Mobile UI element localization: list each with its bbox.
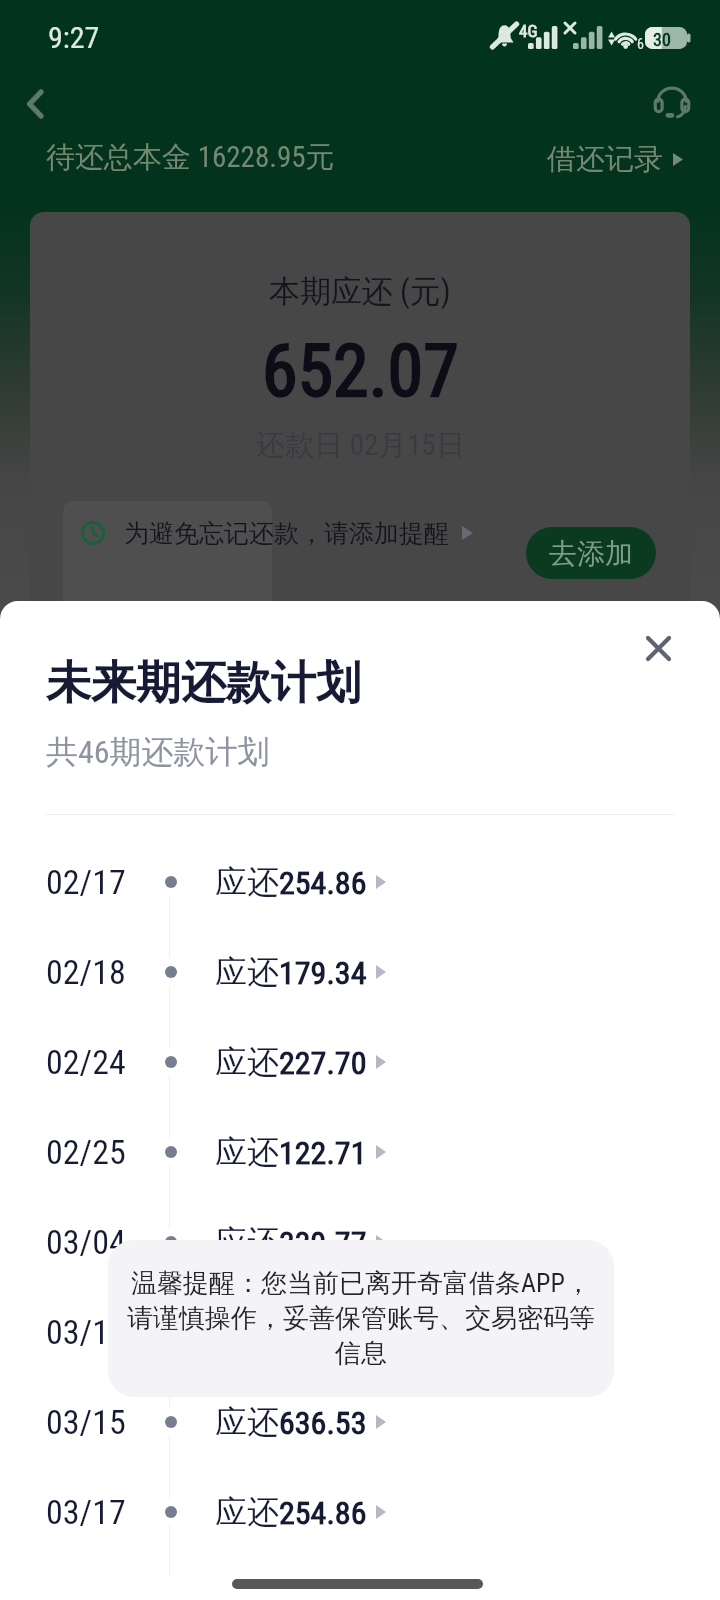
staticText: 339.77 [279,1224,367,1262]
staticText: 179.34 [279,954,367,992]
staticText: 652.07 [262,329,459,413]
staticText: 02/17 [46,862,126,902]
button[interactable]: Customer service [644,76,700,132]
staticText: 应还 [215,1132,279,1172]
staticText: 6 [637,36,644,52]
button[interactable]: 为避免忘记还款，请添加提醒 [81,502,473,564]
staticText: 应还 [215,952,279,992]
button[interactable]: 02/25 [0,1122,720,1182]
staticText: 本期应还 (元) [269,272,451,311]
staticText: 02/18 [46,952,126,992]
staticText: 为避免忘记还款，请添加提醒 [124,518,449,549]
staticText: 03/17 [46,1492,126,1532]
button[interactable]: 02/24 [0,1032,720,1092]
staticText: 应还 [215,1042,279,1082]
button[interactable]: 借还记录 [547,141,683,178]
staticText: 应还 [215,1402,279,1442]
staticText: 02/24 [46,1042,126,1082]
staticText: 共46期还款计划 [46,732,270,772]
staticText: 应还 [215,862,279,902]
staticText: 未来期还款计划 [46,655,361,712]
staticText: 03/15 [46,1402,126,1442]
staticText: 30 [653,29,671,50]
staticText: 4G [519,21,538,41]
staticText: 温馨提醒：您当前已离开奇富借条APP， 请谨慎操作，妥善保管账号、交易密码等 信… [127,1267,595,1370]
staticText: 借还记录 [547,141,663,178]
staticText: 122.71 [279,1134,367,1172]
staticText: 254.86 [279,864,367,902]
button[interactable]: Close [628,618,688,678]
staticText: 227.70 [279,1044,367,1082]
staticText: 214.38 [279,1314,367,1352]
staticText: 636.53 [279,1404,367,1442]
staticText: 254.86 [279,1494,367,1532]
button[interactable]: 03/04 [0,1212,720,1272]
button[interactable]: Back [8,76,64,132]
staticText: 03/11 [46,1312,126,1352]
staticText: 应还 [215,1222,279,1262]
button[interactable]: 03/17 [0,1482,720,1542]
button[interactable]: 03/15 [0,1392,720,1452]
staticText: 去添加 [549,536,633,571]
staticText: 还款日 02月15日 [256,427,465,464]
staticText: 应还 [215,1492,279,1532]
staticText: 02/25 [46,1132,126,1172]
staticText: 9:27 [48,20,100,55]
staticText: 03/04 [46,1222,126,1262]
staticText: 应还 [215,1312,279,1352]
button[interactable]: 去添加 [526,527,656,579]
staticText: 待还总本金 16228.95元 [46,139,335,176]
button[interactable]: 02/17 [0,852,720,912]
button[interactable]: 02/18 [0,942,720,1002]
button[interactable]: 03/11 [0,1302,720,1362]
